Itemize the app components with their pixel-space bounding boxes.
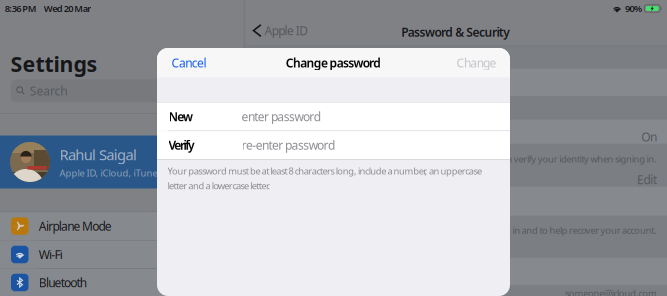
- staticText: Wed 20 Mar: [44, 2, 91, 15]
- staticText: Your password must be at least 8 charact…: [167, 165, 482, 177]
- button[interactable]: Change: [443, 46, 510, 80]
- staticText: letter and a lowercase letter.: [167, 179, 270, 192]
- button[interactable]: Rahul Saigal: [0, 135, 244, 188]
- button[interactable]: Back to Apple ID: [248, 17, 313, 44]
- staticText: Apple ID, iCloud, iTunes & App Store: [59, 167, 215, 179]
- staticText: Verify: [168, 137, 195, 153]
- staticText: Wi-Fi: [39, 246, 63, 262]
- staticText: someone@icloud.com: [565, 287, 657, 296]
- staticText: Edit: [637, 172, 657, 187]
- button[interactable]: Bluetooth: [0, 269, 244, 296]
- staticText: re-enter password: [241, 137, 335, 153]
- staticText: Change password: [286, 55, 381, 71]
- staticText: On: [641, 129, 657, 145]
- button[interactable]: Wi-Fi: [0, 241, 244, 268]
- staticText: Rahul Saigal: [59, 145, 137, 164]
- staticText: Settings: [10, 49, 97, 78]
- staticText: Password & Security: [401, 24, 510, 40]
- staticText: Use your password to verify your identit…: [424, 153, 657, 165]
- button[interactable]: Airplane Mode: [0, 212, 244, 240]
- staticText: 8:36 PM: [5, 2, 37, 15]
- staticText: Use your email address for signing in an…: [372, 224, 657, 236]
- staticText: Apple ID: [264, 23, 308, 38]
- staticText: Airplane Mode: [39, 218, 112, 234]
- button[interactable]: Cancel: [157, 46, 221, 80]
- staticText: Search: [30, 83, 67, 99]
- staticText: enter password: [241, 109, 321, 124]
- staticText: Change: [456, 55, 496, 71]
- staticText: 90%: [625, 2, 642, 15]
- staticText: Cancel: [171, 55, 206, 71]
- staticText: Bluetooth: [39, 274, 87, 290]
- staticText: New: [168, 109, 193, 124]
